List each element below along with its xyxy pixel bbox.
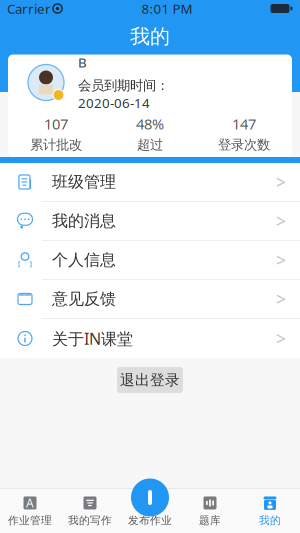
staticText: 48%: [136, 114, 164, 134]
staticText: 8:01 PM: [141, 0, 192, 17]
button[interactable]: 我的写作: [60, 488, 120, 533]
staticText: 会员到期时间： 2020-06-14: [78, 76, 169, 111]
staticText: >: [276, 287, 286, 310]
staticText: >: [276, 327, 286, 350]
button[interactable]: A: [0, 488, 60, 533]
staticText: 题库: [199, 514, 221, 527]
button[interactable]: 我的消息: [0, 202, 300, 241]
staticText: 我的: [130, 24, 170, 49]
staticText: 超过: [137, 137, 163, 153]
button[interactable]: 我的: [240, 488, 300, 533]
staticText: 我的: [259, 514, 281, 527]
staticText: 107: [44, 114, 68, 134]
staticText: 个人信息: [52, 250, 116, 270]
button[interactable]: 发布作业: [120, 488, 180, 533]
staticText: 退出登录: [120, 371, 180, 389]
staticText: Carrier: [7, 0, 51, 17]
button[interactable]: 意见反馈: [0, 280, 300, 319]
button[interactable]: 题库: [180, 488, 240, 533]
button[interactable]: 退出登录: [117, 367, 183, 393]
staticText: >: [276, 170, 286, 193]
button[interactable]: 个人信息: [0, 241, 300, 280]
staticText: 意见反馈: [52, 289, 116, 309]
staticText: 累计批改: [30, 137, 82, 153]
button[interactable]: 发布作业: [131, 478, 169, 516]
staticText: >: [276, 248, 286, 271]
staticText: 我的写作: [68, 514, 112, 527]
staticText: 我的消息: [52, 211, 116, 231]
staticText: B: [78, 53, 87, 71]
staticText: 作业管理: [8, 514, 52, 527]
button[interactable]: 关于IN课堂: [0, 319, 300, 358]
staticText: 班级管理: [52, 172, 116, 192]
staticText: A: [26, 495, 34, 511]
staticText: >: [276, 209, 286, 232]
button[interactable]: 班级管理: [0, 163, 300, 202]
staticText: 登录次数: [218, 137, 270, 153]
staticText: 关于IN课堂: [52, 328, 133, 349]
staticText: 发布作业: [128, 514, 172, 527]
staticText: 147: [232, 114, 256, 134]
